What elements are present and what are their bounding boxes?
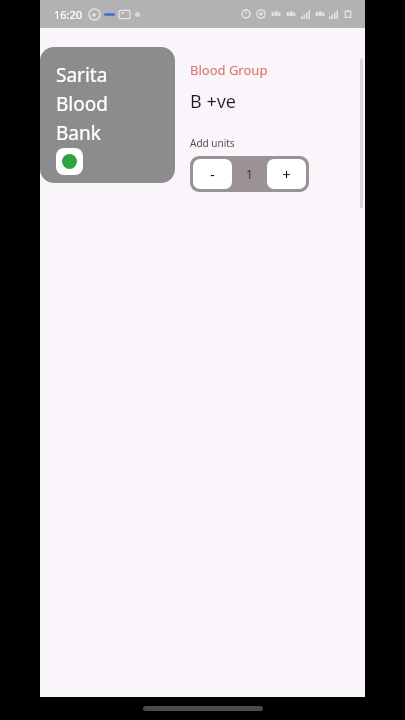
- staticText: 1: [246, 166, 253, 182]
- button[interactable]: Increase units: [267, 159, 306, 189]
- other: Status: available: [56, 148, 83, 175]
- staticText: -: [210, 165, 215, 184]
- button[interactable]: Decrease units: [193, 159, 232, 189]
- staticText: Sarita: [56, 62, 108, 88]
- staticText: 16:20: [54, 7, 83, 22]
- button[interactable]: Sarita: [40, 47, 175, 183]
- staticText: Blood Group: [190, 61, 268, 79]
- staticText: B +ve: [190, 89, 236, 114]
- staticText: Add units: [190, 136, 235, 150]
- staticText: Blood: [56, 91, 108, 117]
- staticText: +: [282, 164, 291, 184]
- staticText: Bank: [56, 120, 101, 146]
